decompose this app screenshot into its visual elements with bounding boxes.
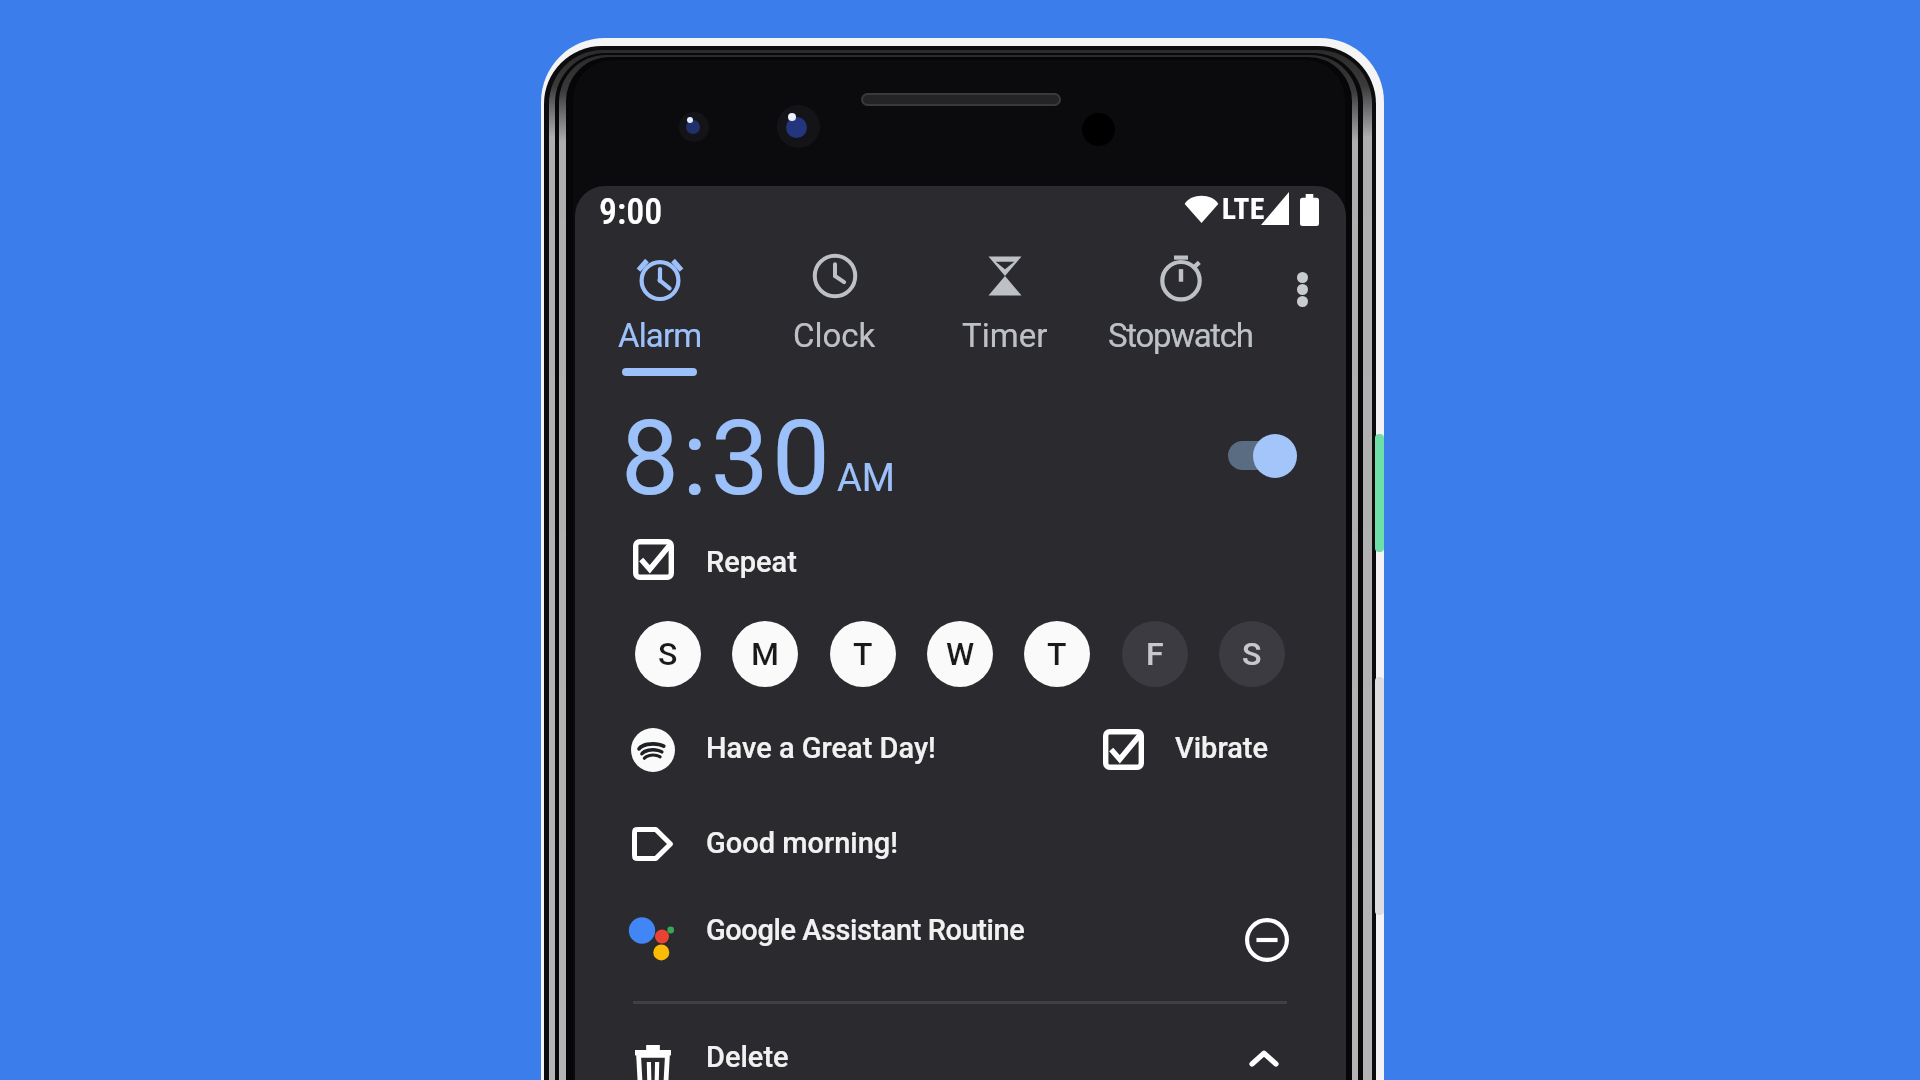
button[interactable]: Google Assistant Routine xyxy=(612,905,1312,967)
staticText: F xyxy=(1146,635,1164,673)
staticText: Clock xyxy=(793,316,876,355)
button[interactable]: Alarm enabled toggle xyxy=(1215,425,1315,491)
button[interactable]: S xyxy=(635,621,701,687)
button[interactable]: Vibrate xyxy=(1085,716,1285,784)
staticText: 9:00 xyxy=(599,191,663,233)
staticText: Repeat xyxy=(706,545,797,579)
staticText: S xyxy=(1242,635,1262,673)
staticText: AM xyxy=(837,456,895,501)
staticText: Timer xyxy=(962,316,1048,355)
button[interactable]: M xyxy=(732,621,798,687)
button[interactable]: T xyxy=(830,621,896,687)
staticText: Vibrate xyxy=(1175,731,1268,765)
staticText: Google Assistant Routine xyxy=(706,913,1025,947)
staticText: Stopwatch xyxy=(1108,316,1253,355)
button[interactable]: Good morning! xyxy=(612,816,942,876)
staticText: 8:30 xyxy=(621,398,834,519)
button[interactable]: F xyxy=(1122,621,1188,687)
button[interactable]: Repeat xyxy=(612,528,862,590)
button[interactable]: Alarm xyxy=(580,244,740,380)
button[interactable]: Timer xyxy=(925,244,1085,380)
staticText: Alarm xyxy=(618,316,702,355)
button[interactable]: T xyxy=(1024,621,1090,687)
button[interactable]: Delete xyxy=(612,1032,1312,1080)
staticText: S xyxy=(658,635,678,673)
button[interactable]: W xyxy=(927,621,993,687)
button[interactable]: Clock xyxy=(754,244,914,380)
button[interactable]: Have a Great Day! xyxy=(608,716,958,784)
button[interactable]: More options xyxy=(1278,251,1326,327)
staticText: Good morning! xyxy=(706,826,898,860)
button[interactable]: S xyxy=(1219,621,1285,687)
staticText: T xyxy=(1047,635,1067,673)
staticText: LTE xyxy=(1222,192,1265,226)
button[interactable]: Collapse xyxy=(1236,1032,1292,1080)
staticText: Delete xyxy=(706,1040,789,1074)
staticText: T xyxy=(853,635,873,673)
button[interactable]: Stopwatch xyxy=(1100,244,1260,380)
button[interactable]: Remove routine xyxy=(1239,912,1295,968)
staticText: Have a Great Day! xyxy=(706,731,936,765)
staticText: M xyxy=(751,635,779,673)
staticText: W xyxy=(946,635,975,673)
